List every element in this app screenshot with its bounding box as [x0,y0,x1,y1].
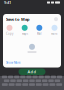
button[interactable]: Mail [36,25,42,35]
button[interactable]: Add [18,68,45,75]
staticText: Add [27,69,36,74]
button[interactable]: Copy [6,25,13,35]
staticText: 9:41 [4,0,11,5]
staticText: Save to Map [6,16,30,22]
staticText: More [51,32,58,35]
button[interactable]: Close [54,17,58,21]
button[interactable]: Maps [22,25,28,35]
staticText: Show More [6,61,21,64]
button[interactable]: More [51,25,58,35]
staticText: Copy [6,32,13,35]
staticText: Mail [37,32,42,35]
staticText: Maps [22,32,28,35]
